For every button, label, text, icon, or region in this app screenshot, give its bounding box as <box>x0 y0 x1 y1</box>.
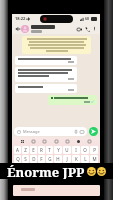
button[interactable]: U <box>63 146 71 154</box>
button[interactable]: X <box>29 164 42 172</box>
staticText: T <box>48 147 51 153</box>
staticText: N <box>90 165 94 171</box>
staticText: 68 <box>85 16 90 21</box>
staticText: U <box>65 147 69 153</box>
staticText: F <box>40 156 43 162</box>
button[interactable]: Keyboard tool 5 <box>76 139 81 144</box>
button[interactable]: B <box>71 164 84 172</box>
staticText: K <box>75 156 78 162</box>
button[interactable]: I <box>72 146 80 154</box>
button[interactable]: More options <box>91 25 98 32</box>
button[interactable]: P <box>90 146 98 154</box>
staticText: Y <box>57 147 60 153</box>
staticText: Q <box>16 156 20 162</box>
staticText: I <box>75 147 77 153</box>
button[interactable] <box>48 95 97 105</box>
staticText: H <box>56 156 60 162</box>
staticText: B <box>76 165 79 171</box>
staticText: G <box>48 156 52 162</box>
staticText: D <box>32 156 36 162</box>
staticText: M <box>92 156 97 162</box>
button[interactable]: Keyboard tool 2 <box>42 139 47 144</box>
button[interactable]: A <box>14 146 21 154</box>
button[interactable]: Z <box>22 146 29 154</box>
button[interactable]: Keyboard tool 4 <box>65 139 70 144</box>
button[interactable]: Keyboard tool 6 <box>87 139 92 144</box>
button[interactable]: Keyboard tool 3 <box>54 139 59 144</box>
button[interactable]: S <box>22 155 29 163</box>
button[interactable]: W <box>14 164 28 172</box>
staticText: Message <box>23 129 40 134</box>
button[interactable]: Profile photo <box>21 25 29 33</box>
button[interactable]: D <box>30 155 37 163</box>
staticText: X <box>34 165 37 171</box>
button[interactable]: R <box>38 146 45 154</box>
button[interactable]: K <box>72 155 80 163</box>
staticText: A <box>16 147 19 153</box>
button[interactable]: Keyboard tool 0 <box>20 139 25 144</box>
button[interactable]: J <box>63 155 71 163</box>
button[interactable]: N <box>85 164 98 172</box>
button[interactable]: Keyboard tool 1 <box>31 139 36 144</box>
button[interactable]: Send <box>89 127 98 136</box>
staticText: 18:22 <box>15 16 26 21</box>
staticText: R <box>40 147 43 153</box>
button[interactable]: Q <box>14 155 21 163</box>
button[interactable]: C <box>43 164 56 172</box>
staticText: W <box>19 165 24 171</box>
staticText: P <box>93 147 96 153</box>
button[interactable] <box>15 84 77 93</box>
button[interactable] <box>31 25 75 33</box>
button[interactable]: H <box>54 155 62 163</box>
staticText: O <box>83 147 87 153</box>
staticText: V <box>62 165 65 171</box>
button[interactable]: Back <box>14 25 21 32</box>
staticText: Énorme JPP <box>7 163 85 179</box>
staticText: E <box>32 147 35 153</box>
button[interactable]: M <box>90 155 98 163</box>
button[interactable] <box>15 67 77 82</box>
button[interactable]: Video call <box>75 25 83 33</box>
button[interactable]: V <box>57 164 70 172</box>
staticText: C <box>48 165 51 171</box>
button[interactable]: F <box>38 155 45 163</box>
button[interactable]: T <box>46 146 53 154</box>
button[interactable]: L <box>81 155 89 163</box>
button[interactable] <box>15 56 77 65</box>
button[interactable]: Voice call <box>83 25 91 33</box>
staticText: J <box>66 156 68 162</box>
button[interactable]: Y <box>54 146 62 154</box>
staticText: S <box>24 156 27 162</box>
button[interactable]: O <box>81 146 89 154</box>
staticText: L <box>84 156 87 162</box>
button[interactable]: G <box>46 155 53 163</box>
button[interactable]: E <box>30 146 37 154</box>
staticText: Z <box>24 147 27 153</box>
button[interactable]: Message <box>14 127 87 136</box>
